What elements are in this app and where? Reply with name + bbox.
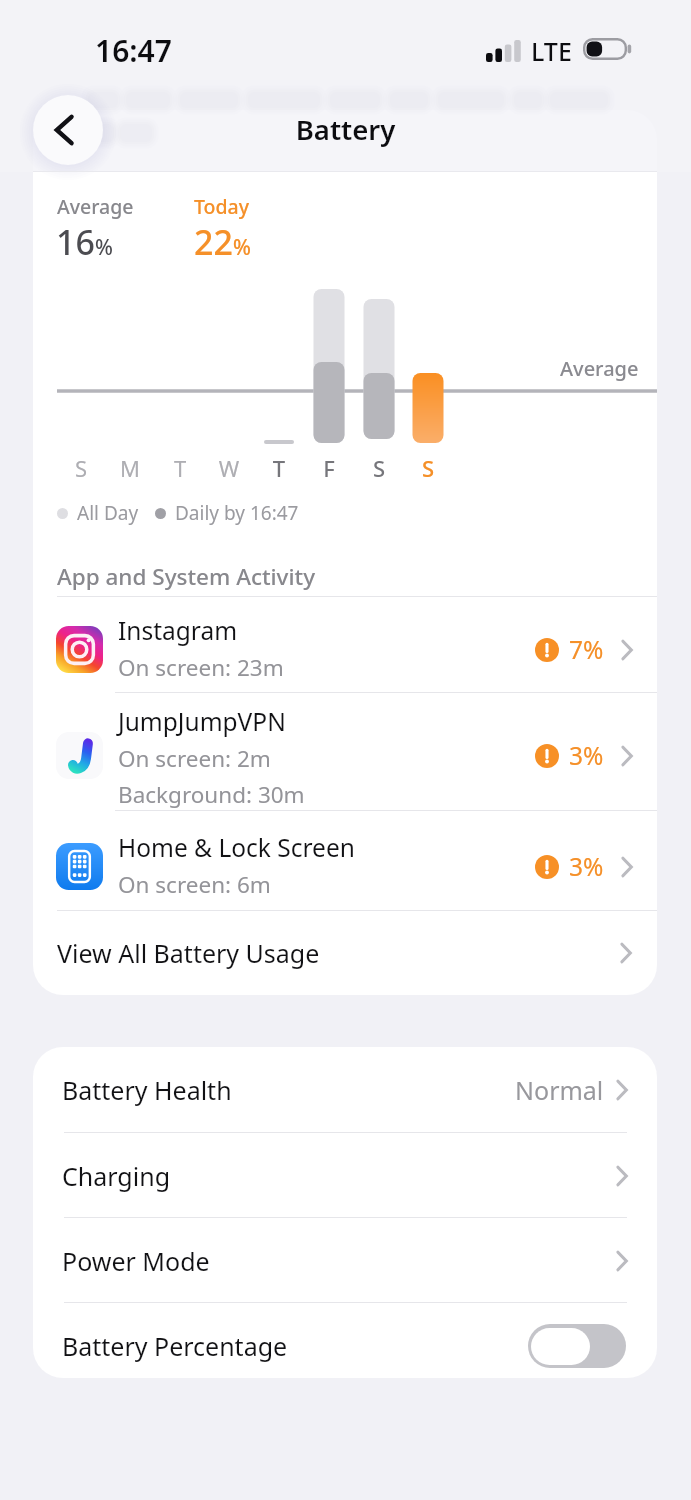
staticText: 16 xyxy=(56,219,95,265)
staticText: Battery Health xyxy=(62,1073,232,1107)
staticText: S xyxy=(69,453,93,483)
staticText: Daily by 16:47 xyxy=(175,500,299,526)
button[interactable]: JumpJumpVPN xyxy=(33,693,657,810)
staticText: Normal xyxy=(515,1073,604,1107)
staticText: On screen: 23m xyxy=(118,652,284,683)
staticText: 16:47 xyxy=(95,30,172,71)
staticText: Battery xyxy=(0,111,691,148)
staticText: App and System Activity xyxy=(57,561,316,592)
button[interactable]: Battery Percentage toggle xyxy=(528,1324,626,1368)
button[interactable]: Home & Lock Screen xyxy=(33,811,657,910)
staticText: S xyxy=(367,453,391,483)
staticText: F xyxy=(317,453,341,483)
button[interactable]: Power Mode xyxy=(33,1218,657,1303)
staticText: M xyxy=(118,453,142,483)
staticText: Power Mode xyxy=(62,1244,210,1278)
staticText: 7% xyxy=(569,633,604,666)
button[interactable]: Instagram xyxy=(33,598,657,692)
staticText: LTE xyxy=(531,34,572,68)
staticText: W xyxy=(217,453,241,483)
staticText: T xyxy=(267,453,291,483)
staticText: 3% xyxy=(569,850,604,883)
staticText: T xyxy=(168,453,192,483)
staticText: Background: 30m xyxy=(118,779,305,810)
staticText: 22 xyxy=(194,219,233,265)
staticText: Average xyxy=(57,193,134,220)
staticText: Instagram xyxy=(118,614,238,647)
staticText: Average xyxy=(560,355,639,382)
staticText: Today xyxy=(194,193,250,220)
staticText: View All Battery Usage xyxy=(57,936,320,970)
staticText: % xyxy=(233,233,251,262)
staticText: Battery Percentage xyxy=(62,1329,288,1363)
button[interactable]: Battery Health xyxy=(33,1047,657,1132)
staticText: All Day xyxy=(77,500,139,526)
staticText: % xyxy=(95,233,113,262)
button[interactable]: Battery Percentage xyxy=(33,1303,657,1378)
button[interactable]: Back xyxy=(33,95,103,165)
staticText: 3% xyxy=(569,739,604,772)
staticText: S xyxy=(416,453,440,483)
staticText: Charging xyxy=(62,1159,171,1193)
staticText: Home & Lock Screen xyxy=(118,831,355,864)
button[interactable]: Charging xyxy=(33,1133,657,1218)
staticText: JumpJumpVPN xyxy=(118,705,286,738)
staticText: On screen: 2m xyxy=(118,743,271,774)
staticText: On screen: 6m xyxy=(118,869,271,900)
button[interactable]: View All Battery Usage xyxy=(33,911,657,995)
